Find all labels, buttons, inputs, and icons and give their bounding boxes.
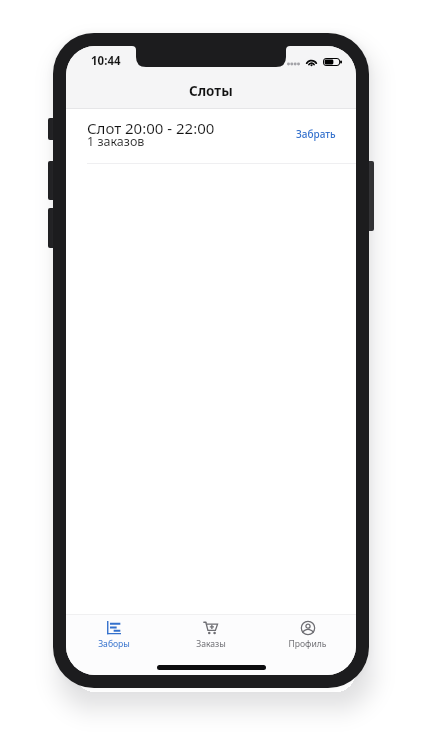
staticText: Забрать bbox=[296, 127, 336, 141]
staticText: Заказы bbox=[196, 638, 226, 650]
staticText: Слот 20:00 - 22:00 bbox=[87, 118, 215, 138]
button[interactable]: Слот 20:00 - 22:00 bbox=[66, 109, 356, 163]
staticText: Заборы bbox=[98, 638, 130, 650]
staticText: 10:44 bbox=[91, 53, 121, 69]
button[interactable]: Заборы bbox=[66, 618, 162, 652]
staticText: 1 заказов bbox=[87, 133, 145, 150]
staticText: Профиль bbox=[288, 638, 327, 650]
button[interactable]: Забрать bbox=[292, 125, 340, 147]
button[interactable]: Профиль bbox=[259, 618, 356, 652]
staticText: Слоты bbox=[189, 82, 233, 100]
button[interactable]: Заказы bbox=[162, 618, 259, 652]
